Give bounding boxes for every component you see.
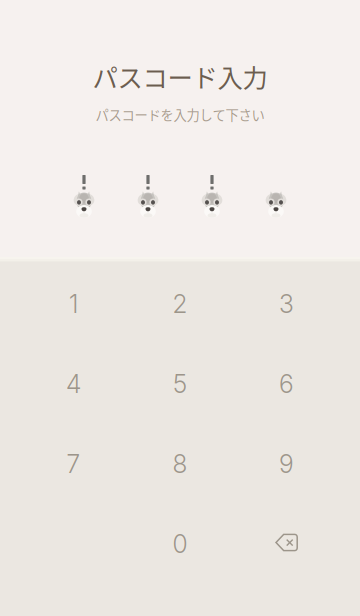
button[interactable]: 0 <box>127 504 233 584</box>
staticText: 3 <box>279 289 294 319</box>
staticText: 2 <box>172 289 187 319</box>
staticText: パスコード入力 <box>92 58 267 95</box>
staticText: 4 <box>66 369 81 399</box>
button[interactable]: 7 <box>20 424 127 504</box>
button[interactable]: 2 <box>127 264 233 344</box>
button[interactable]: 3 <box>233 264 340 344</box>
button[interactable]: 9 <box>233 424 340 504</box>
staticText: 1 <box>69 289 78 319</box>
button[interactable]: 8 <box>127 424 233 504</box>
staticText: パスコードを入力して下さい <box>95 105 264 124</box>
staticText: 7 <box>66 449 80 479</box>
button[interactable]: 6 <box>233 344 340 424</box>
button[interactable]: 4 <box>20 344 127 424</box>
button[interactable]: 1 <box>20 264 127 344</box>
staticText: 5 <box>173 369 187 399</box>
button[interactable]: 5 <box>127 344 233 424</box>
staticText: 8 <box>172 449 187 479</box>
staticText: 6 <box>279 369 294 399</box>
staticText: 0 <box>172 529 187 559</box>
staticText: 9 <box>279 449 294 479</box>
button[interactable]: Delete <box>233 504 340 584</box>
